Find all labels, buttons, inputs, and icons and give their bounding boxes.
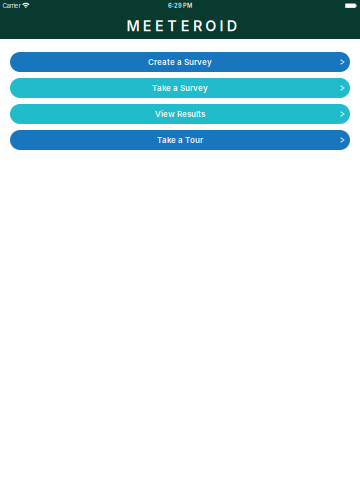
staticText: Take a Tour <box>157 135 203 145</box>
button[interactable]: View Results <box>10 104 350 124</box>
staticText: Take a Survey <box>152 83 208 93</box>
button[interactable]: Take a Survey <box>10 78 350 98</box>
staticText: MEETEROID <box>126 17 237 35</box>
staticText: View Results <box>155 109 205 119</box>
staticText: 6:29 PM <box>168 2 192 9</box>
staticText: Carrier <box>3 2 21 9</box>
button[interactable]: Create a Survey <box>10 52 350 72</box>
staticText: Create a Survey <box>148 57 212 67</box>
button[interactable]: Take a Tour <box>10 130 350 150</box>
